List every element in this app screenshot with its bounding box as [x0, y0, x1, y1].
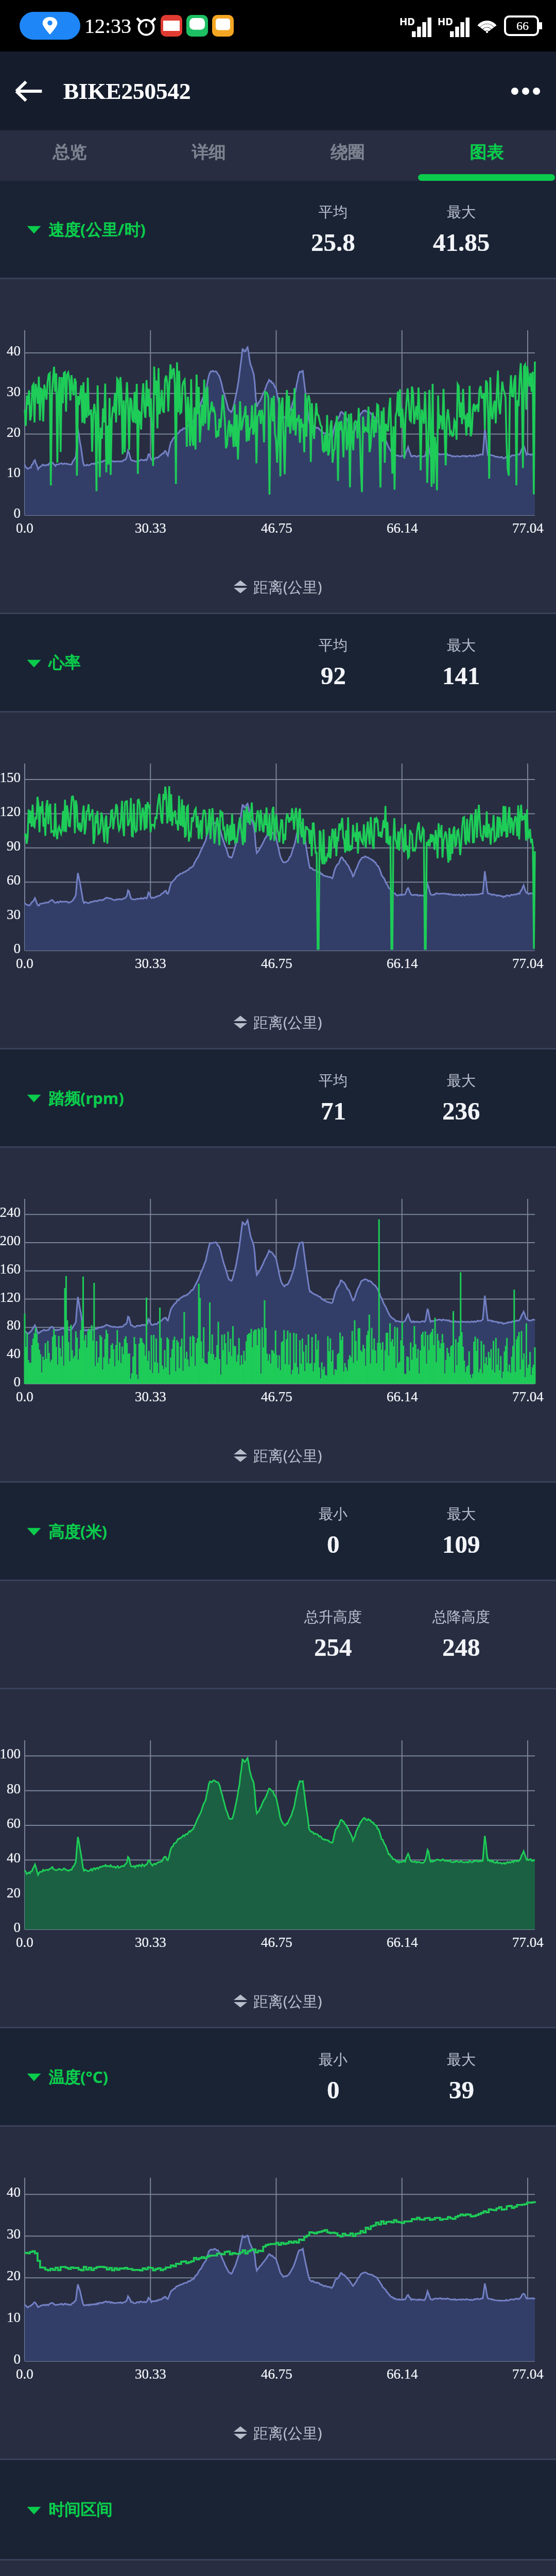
staticText: 总览	[53, 142, 86, 163]
staticText: 240	[0, 1205, 21, 1220]
staticText: 77.04	[512, 1935, 544, 1950]
staticText: 0	[13, 1920, 21, 1935]
button[interactable]: More options	[495, 52, 556, 130]
staticText: 150	[0, 770, 21, 785]
staticText: 0	[13, 505, 21, 521]
staticText: 40	[7, 1850, 21, 1866]
staticText: 平均	[319, 1072, 347, 1090]
staticText: 77.04	[512, 956, 544, 971]
staticText: 20	[7, 2268, 21, 2283]
staticText: 77.04	[512, 1389, 544, 1404]
staticText: 速度(公里/时)	[48, 218, 146, 240]
staticText: 141	[442, 662, 480, 689]
staticText: 41.85	[433, 228, 490, 256]
staticText: 30	[7, 2226, 21, 2242]
staticText: 0.0	[16, 1935, 33, 1950]
staticText: 46.75	[261, 2366, 292, 2382]
staticText: 10	[7, 465, 21, 480]
staticText: 距离(公里)	[253, 2422, 322, 2443]
staticText: 最小	[319, 1505, 347, 1523]
button[interactable]: 踏频(rpm)	[27, 1087, 124, 1109]
staticText: 距离(公里)	[253, 1012, 322, 1032]
staticText: 0	[13, 2351, 21, 2367]
staticText: 60	[7, 1816, 21, 1831]
staticText: 40	[7, 1346, 21, 1361]
staticText: 30	[7, 907, 21, 922]
staticText: 高度(米)	[48, 1520, 108, 1542]
button[interactable]: 时间区间	[27, 2500, 112, 2520]
staticText: 图表	[470, 142, 503, 163]
staticText: 46.75	[261, 520, 292, 536]
staticText: 距离(公里)	[253, 1445, 322, 1466]
staticText: 66	[516, 19, 529, 33]
staticText: 总降高度	[432, 1608, 490, 1626]
staticText: 时间区间	[48, 2500, 112, 2520]
button[interactable]: 距离(公里)	[234, 1012, 322, 1032]
staticText: 77.04	[512, 2366, 544, 2382]
staticText: 0	[327, 2076, 340, 2104]
staticText: 25.8	[311, 228, 355, 256]
staticText: 92	[321, 662, 346, 689]
staticText: 248	[442, 1633, 480, 1661]
staticText: 40	[7, 2184, 21, 2200]
button[interactable]: 高度(米)	[27, 1520, 108, 1542]
staticText: 最大	[447, 1072, 476, 1090]
staticText: 0	[327, 1530, 340, 1558]
button[interactable]: 详细	[139, 130, 278, 181]
staticText: 0	[13, 941, 21, 956]
staticText: 0.0	[16, 520, 33, 536]
staticText: 平均	[319, 636, 347, 654]
staticText: 30.33	[135, 1935, 166, 1950]
staticText: 20	[7, 425, 21, 440]
staticText: 最大	[447, 636, 476, 654]
staticText: 最小	[319, 2050, 347, 2069]
staticText: 100	[0, 1746, 21, 1761]
button[interactable]: 绕圈	[278, 130, 417, 181]
staticText: 160	[0, 1261, 21, 1277]
button[interactable]: 距离(公里)	[234, 1445, 322, 1466]
staticText: 46.75	[261, 956, 292, 971]
staticText: 0.0	[16, 1389, 33, 1404]
staticText: 66.14	[387, 956, 418, 971]
staticText: 最大	[447, 1505, 476, 1523]
staticText: 绕圈	[331, 142, 364, 163]
staticText: 77.04	[512, 520, 544, 536]
staticText: 80	[7, 1781, 21, 1797]
staticText: 30	[7, 384, 21, 399]
staticText: 109	[442, 1530, 480, 1558]
button[interactable]: 距离(公里)	[234, 577, 322, 597]
staticText: 66.14	[387, 2366, 418, 2382]
staticText: 46.75	[261, 1935, 292, 1950]
staticText: 20	[7, 1885, 21, 1901]
button[interactable]: 总览	[0, 130, 139, 181]
button[interactable]: 距离(公里)	[234, 1991, 322, 2011]
button[interactable]: 距离(公里)	[234, 2422, 322, 2443]
button[interactable]: 速度(公里/时)	[27, 218, 146, 240]
staticText: 236	[442, 1097, 480, 1125]
button[interactable]: Back	[0, 52, 58, 130]
staticText: 66.14	[387, 1389, 418, 1404]
button[interactable]: 温度(°C)	[27, 2066, 109, 2088]
staticText: HD	[399, 14, 415, 28]
staticText: 46.75	[261, 1389, 292, 1404]
staticText: BIKE250542	[63, 78, 191, 104]
staticText: 66.14	[387, 520, 418, 536]
staticText: 30.33	[135, 956, 166, 971]
staticText: 0.0	[16, 2366, 33, 2382]
staticText: HD	[438, 14, 453, 28]
button[interactable]: 图表	[417, 130, 556, 181]
staticText: 0.0	[16, 956, 33, 971]
staticText: 80	[7, 1317, 21, 1333]
staticText: 12:33	[84, 14, 132, 37]
staticText: 详细	[192, 142, 225, 163]
button[interactable]: 心率	[27, 653, 80, 673]
staticText: 最大	[447, 203, 476, 221]
staticText: 0	[13, 1374, 21, 1389]
staticText: 距离(公里)	[253, 1991, 322, 2011]
staticText: 30.33	[135, 520, 166, 536]
staticText: 心率	[48, 653, 80, 673]
staticText: 温度(°C)	[48, 2066, 109, 2088]
staticText: 10	[7, 2310, 21, 2325]
staticText: 254	[314, 1633, 352, 1661]
staticText: 71	[321, 1097, 346, 1125]
